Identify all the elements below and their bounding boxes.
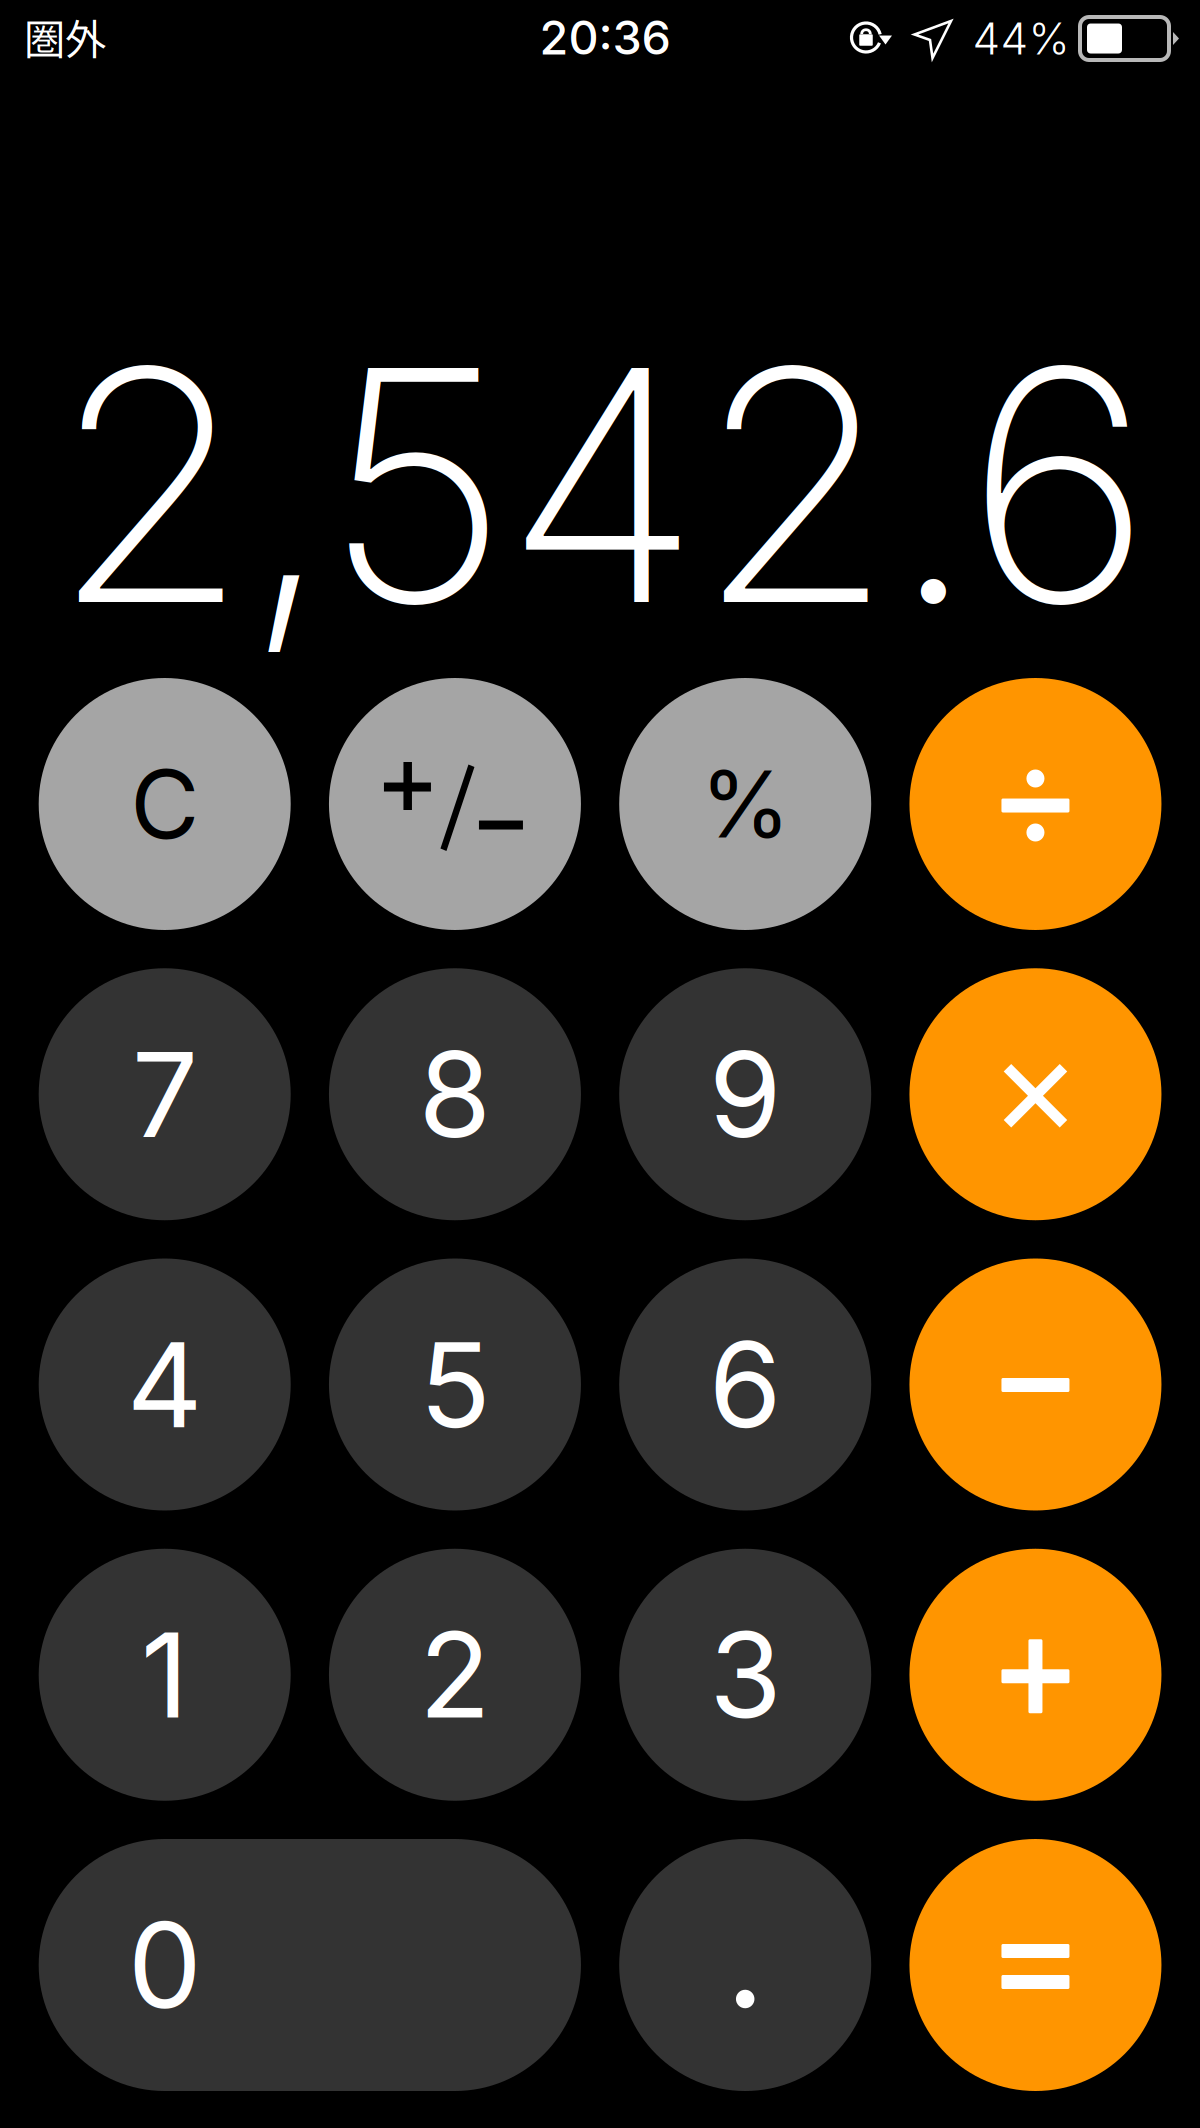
- staticText: 2: [419, 1604, 491, 1746]
- staticText: 7: [132, 1023, 198, 1165]
- button[interactable]: Equals: [909, 1839, 1161, 2091]
- button[interactable]: 0: [39, 1839, 581, 2091]
- button[interactable]: 7: [39, 968, 291, 1220]
- button[interactable]: 6: [619, 1258, 871, 1510]
- staticText: 3: [709, 1604, 781, 1746]
- button[interactable]: 8: [329, 968, 581, 1220]
- staticText: 9: [709, 1023, 782, 1165]
- staticText: %: [700, 748, 790, 860]
- button[interactable]: 2: [329, 1549, 581, 1801]
- staticText: 44%: [972, 12, 1069, 65]
- staticText: 2,542.6: [51, 291, 1152, 679]
- staticText: 20:36: [539, 9, 670, 66]
- staticText: 4: [127, 1313, 203, 1455]
- staticText: C: [130, 747, 199, 861]
- button[interactable]: Plus: [909, 1549, 1161, 1801]
- button[interactable]: Divide: [909, 678, 1161, 930]
- button[interactable]: 4: [39, 1258, 291, 1510]
- staticText: 5: [419, 1313, 490, 1455]
- staticText: 6: [709, 1313, 782, 1455]
- button[interactable]: 1: [39, 1549, 291, 1801]
- button[interactable]: Minus: [909, 1258, 1161, 1510]
- button[interactable]: Plus or minus: [329, 678, 581, 930]
- staticText: 0: [128, 1894, 202, 2036]
- staticText: 圏外: [24, 7, 106, 66]
- button[interactable]: C: [39, 678, 291, 930]
- button[interactable]: Decimal point: [619, 1839, 871, 2091]
- staticText: 8: [418, 1023, 491, 1165]
- button[interactable]: 5: [329, 1258, 581, 1510]
- staticText: 1: [141, 1604, 189, 1746]
- button[interactable]: 9: [619, 968, 871, 1220]
- button[interactable]: %: [619, 678, 871, 930]
- button[interactable]: 3: [619, 1549, 871, 1801]
- button[interactable]: Multiply: [909, 968, 1161, 1220]
